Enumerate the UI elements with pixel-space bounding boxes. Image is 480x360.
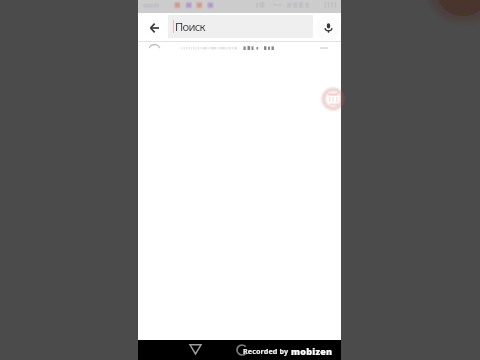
button[interactable]: Voice search: [316, 16, 340, 40]
button[interactable]: Back: [188, 342, 202, 356]
button[interactable]: [138, 42, 341, 58]
button[interactable]: Поиск: [168, 15, 313, 38]
staticText: mobizen: [291, 345, 333, 357]
staticText: Поиск: [175, 19, 205, 34]
button[interactable]: Back: [141, 13, 168, 42]
staticText: Recorded by: [243, 346, 289, 356]
